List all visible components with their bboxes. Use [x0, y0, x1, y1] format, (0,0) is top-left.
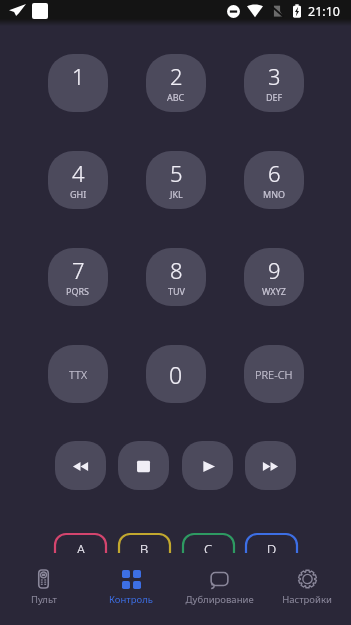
staticText: B — [140, 540, 149, 558]
button[interactable]: 1 — [48, 54, 108, 112]
button[interactable]: D — [245, 533, 298, 571]
button[interactable]: 2 — [146, 54, 206, 112]
button[interactable]: B — [118, 533, 171, 571]
button[interactable]: PRE-CH — [244, 345, 304, 403]
button[interactable]: A — [54, 533, 107, 571]
button[interactable]: 9 — [244, 248, 304, 306]
staticText: 3 — [268, 61, 281, 91]
staticText: 7 — [72, 255, 85, 285]
staticText: D — [267, 540, 277, 558]
button[interactable]: 6 — [244, 151, 304, 209]
button[interactable]: Контроль — [87, 553, 175, 606]
button[interactable]: TTX — [48, 345, 108, 403]
staticText: 8 — [170, 255, 183, 285]
staticText: PQRS — [66, 285, 90, 297]
staticText: 2 — [170, 61, 183, 91]
button[interactable]: 4 — [48, 151, 108, 209]
button[interactable]: 5 — [146, 151, 206, 209]
staticText: PRE-CH — [255, 367, 293, 382]
staticText: TTX — [69, 367, 87, 382]
staticText: JKL — [170, 188, 183, 200]
button[interactable]: 7 — [48, 248, 108, 306]
staticText: 4 — [72, 158, 85, 188]
staticText: TUV — [168, 285, 185, 297]
staticText: Контроль — [109, 593, 153, 606]
button[interactable]: Stop — [118, 441, 169, 490]
button[interactable]: Play — [182, 441, 233, 490]
staticText: DEF — [266, 91, 283, 103]
button[interactable]: C — [182, 533, 235, 571]
button[interactable]: Настройки — [263, 553, 351, 606]
staticText: 6 — [268, 158, 281, 188]
staticText: GHI — [70, 188, 87, 200]
staticText: 9 — [268, 255, 281, 285]
staticText: 5 — [170, 158, 183, 188]
button[interactable]: Пульт — [0, 553, 87, 606]
staticText: Дублирование — [185, 593, 254, 606]
button[interactable]: Rewind — [55, 441, 106, 490]
staticText: ABC — [167, 91, 185, 103]
staticText: 1 — [72, 61, 85, 91]
staticText: Пульт — [31, 593, 57, 606]
button[interactable]: Fast forward — [245, 441, 296, 490]
button[interactable]: 3 — [244, 54, 304, 112]
staticText: A — [77, 540, 85, 558]
staticText: WXYZ — [262, 285, 286, 297]
staticText: C — [204, 540, 213, 558]
button[interactable]: Дублирование — [175, 553, 263, 606]
button[interactable]: 0 — [146, 345, 206, 403]
staticText: 21:10 — [308, 3, 340, 20]
staticText: Настройки — [282, 593, 332, 606]
staticText: MNO — [263, 188, 286, 200]
staticText: 0 — [169, 359, 183, 390]
button[interactable]: 8 — [146, 248, 206, 306]
